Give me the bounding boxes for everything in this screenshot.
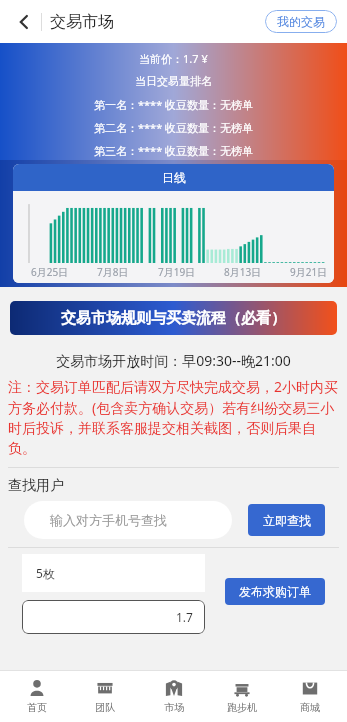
staticText: 交易市场 [50, 12, 114, 32]
button[interactable]: 立即查找 [248, 504, 325, 536]
staticText: 当前价：1.7 ¥ [139, 51, 208, 66]
staticText: 商城 [300, 701, 320, 714]
button[interactable]: 团队 [74, 670, 136, 722]
staticText: 跑步机 [227, 701, 257, 714]
staticText: 当日交易量排名 [135, 74, 212, 88]
staticText: 发布求购订单 [239, 584, 311, 599]
staticText: 团队 [95, 701, 115, 714]
staticText: 注：交易订单匹配后请双方尽快完成交易，2小时内买方务必付款。(包含卖方确认交易）… [8, 377, 339, 457]
button[interactable]: 跑步机 [211, 670, 273, 722]
staticText: 输入对方手机号查找 [50, 512, 167, 528]
staticText: 第二名：**** 收豆数量：无榜单 [94, 120, 254, 135]
button[interactable]: 市场 [143, 670, 205, 722]
button[interactable]: 商城 [279, 670, 341, 722]
staticText: 1.7 [176, 609, 193, 625]
staticText: 市场 [164, 701, 184, 714]
button[interactable]: Back [8, 6, 40, 38]
staticText: 查找用户 [8, 477, 64, 495]
staticText: 5枚 [36, 565, 55, 581]
button[interactable]: 5枚 [22, 554, 205, 592]
staticText: 7月19日 [158, 265, 196, 279]
staticText: 7月8日 [97, 265, 129, 279]
button[interactable]: 我的交易 [265, 10, 337, 33]
button[interactable]: 1.7 [22, 600, 205, 634]
staticText: 9月21日 [290, 265, 328, 279]
staticText: 8月13日 [224, 265, 262, 279]
staticText: 交易市场开放时间：早09:30--晚21:00 [8, 351, 339, 370]
button[interactable]: 首页 [6, 670, 68, 722]
staticText: 第三名：**** 收豆数量：无榜单 [94, 143, 254, 158]
staticText: 第一名：**** 收豆数量：无榜单 [94, 97, 254, 112]
staticText: 立即查找 [263, 513, 311, 528]
staticText: 交易市场规则与买卖流程（必看） [61, 309, 286, 328]
staticText: 我的交易 [277, 14, 325, 29]
staticText: 日线 [162, 170, 186, 185]
staticText: 6月25日 [31, 265, 69, 279]
button[interactable]: 交易市场规则与买卖流程（必看） [10, 301, 337, 335]
staticText: 首页 [27, 701, 47, 714]
button[interactable]: 输入对方手机号查找 [24, 501, 232, 539]
button[interactable]: 发布求购订单 [225, 578, 325, 605]
